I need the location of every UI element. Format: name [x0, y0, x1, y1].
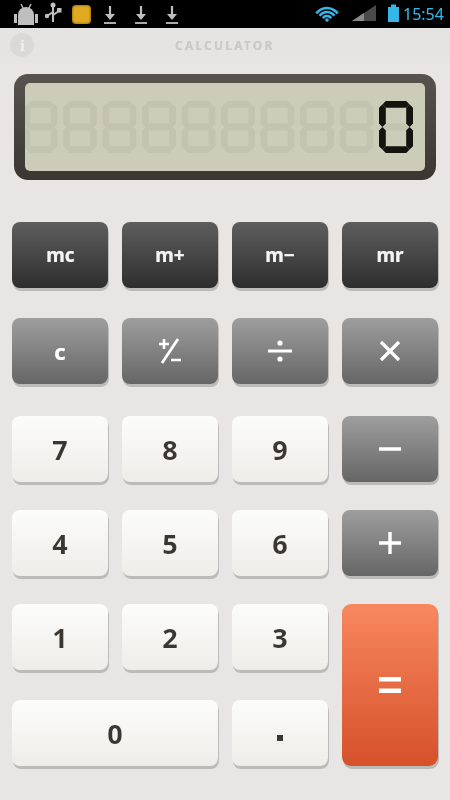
button[interactable]: Minus [342, 416, 438, 482]
button[interactable]: Divide [232, 318, 328, 384]
staticText: c [54, 336, 66, 366]
staticText: mc [46, 242, 75, 268]
staticText: m+ [155, 242, 185, 268]
button[interactable]: Clear [12, 318, 108, 384]
staticText: mr [376, 242, 404, 268]
staticText: 2 [162, 619, 178, 656]
button[interactable]: mr [342, 222, 438, 288]
staticText: CALCULATOR [175, 37, 275, 53]
button[interactable]: m+ [122, 222, 218, 288]
button[interactable]: m− [232, 222, 328, 288]
button[interactable]: 0 [12, 700, 218, 766]
staticText: 3 [272, 619, 288, 656]
button[interactable]: Info [10, 33, 34, 57]
button[interactable]: 2 [122, 604, 218, 670]
button[interactable]: 3 [232, 604, 328, 670]
staticText: i [20, 36, 25, 55]
staticText: 4 [52, 525, 68, 562]
button[interactable]: Multiply [342, 318, 438, 384]
button[interactable]: 8 [122, 416, 218, 482]
staticText: 6 [272, 525, 288, 562]
staticText: 0 [107, 715, 123, 752]
button[interactable]: Plus [342, 510, 438, 576]
staticText: 1 [52, 619, 68, 656]
button[interactable]: mc [12, 222, 108, 288]
staticText: 8 [162, 431, 178, 468]
staticText: m− [265, 242, 295, 268]
staticText: 7 [52, 431, 68, 468]
button[interactable]: Decimal point [232, 700, 328, 766]
button[interactable]: 5 [122, 510, 218, 576]
button[interactable]: Plus minus [122, 318, 218, 384]
button[interactable]: 7 [12, 416, 108, 482]
button[interactable]: 9 [232, 416, 328, 482]
button[interactable]: Equals [342, 604, 438, 766]
staticText: 5 [162, 525, 178, 562]
button[interactable]: 1 [12, 604, 108, 670]
staticText: 15:54 [403, 3, 444, 25]
button[interactable]: 4 [12, 510, 108, 576]
button[interactable]: 6 [232, 510, 328, 576]
staticText: 9 [272, 431, 288, 468]
